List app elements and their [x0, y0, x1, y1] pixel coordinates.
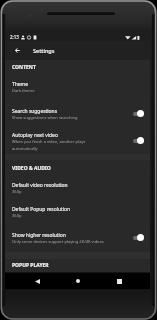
- button[interactable]: Search suggestions: [5, 100, 150, 128]
- staticText: Settings: [33, 47, 55, 54]
- button[interactable]: Back: [29, 273, 45, 289]
- button[interactable]: Back: [5, 41, 29, 60]
- staticText: Default Popup resolution: [12, 206, 71, 213]
- staticText: VIDEO & AUDIO: [12, 165, 51, 172]
- staticText: Show higher resolution: [12, 232, 66, 239]
- staticText: Theme: [12, 81, 28, 88]
- button[interactable]: Home: [70, 273, 86, 289]
- staticText: 360p: [12, 213, 22, 219]
- staticText: CONTENT: [12, 64, 36, 71]
- staticText: Show suggestions when searching: [12, 115, 78, 121]
- button[interactable]: Theme: [5, 75, 150, 100]
- staticText: Only some devices support playing 2K/4K …: [12, 239, 104, 245]
- button[interactable]: Autoplay next video: [5, 128, 150, 154]
- button[interactable]: Default video resolution: [5, 176, 150, 200]
- button[interactable]: Toggle Autoplay next video: [133, 137, 144, 144]
- staticText: Dark theme: [12, 88, 35, 94]
- button[interactable]: Toggle Search suggestions: [133, 110, 144, 117]
- staticText: 2:13: [10, 34, 19, 40]
- staticText: Autoplay next video: [12, 132, 58, 139]
- staticText: Search suggestions: [12, 108, 58, 115]
- button[interactable]: Toggle Show higher resolution: [133, 234, 144, 241]
- staticText: Default video resolution: [12, 182, 68, 189]
- staticText: POPUP PLAYER: [12, 262, 49, 269]
- button[interactable]: Show higher resolution: [5, 224, 150, 252]
- staticText: When you finish a video, another plays a…: [12, 139, 94, 151]
- button[interactable]: Default Popup resolution: [5, 200, 150, 224]
- button[interactable]: Recent apps: [111, 273, 127, 289]
- staticText: 360p: [12, 189, 22, 195]
